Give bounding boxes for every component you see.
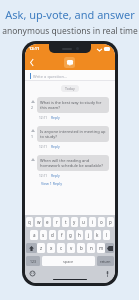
button[interactable]: f bbox=[58, 230, 65, 240]
button[interactable]: e bbox=[44, 217, 51, 227]
button[interactable]: Dictate bbox=[104, 270, 111, 277]
staticText: Reply bbox=[51, 173, 60, 178]
staticText: t bbox=[65, 219, 67, 225]
button[interactable]: space bbox=[42, 256, 95, 266]
staticText: u bbox=[82, 219, 85, 225]
staticText: x bbox=[50, 245, 53, 251]
staticText: 12:11 bbox=[39, 174, 48, 178]
button[interactable]: t bbox=[62, 217, 69, 227]
staticText: q bbox=[28, 219, 31, 225]
button[interactable]: Up-vote bbox=[29, 98, 36, 105]
button[interactable]: s bbox=[40, 230, 47, 240]
button[interactable]: p bbox=[107, 217, 114, 227]
button[interactable]: Reply bbox=[51, 144, 60, 149]
button[interactable]: Write a question... bbox=[25, 70, 115, 81]
staticText: c bbox=[60, 245, 63, 251]
staticText: l bbox=[106, 232, 108, 238]
button[interactable]: l bbox=[103, 230, 110, 240]
staticText: Today bbox=[65, 86, 75, 91]
button[interactable]: Shift bbox=[26, 243, 37, 253]
staticText: p bbox=[109, 219, 112, 225]
staticText: Ask, up-vote, and answer bbox=[5, 7, 135, 22]
button[interactable]: App logo bbox=[64, 57, 75, 68]
button[interactable]: n bbox=[87, 243, 95, 253]
button[interactable]: z bbox=[37, 243, 45, 253]
staticText: 12:11 bbox=[39, 116, 48, 120]
button[interactable]: h bbox=[76, 230, 83, 240]
button[interactable]: Is anyone interested in meeting up to st… bbox=[37, 126, 109, 142]
button[interactable]: What is the best way to study for this e… bbox=[37, 97, 109, 113]
staticText: return bbox=[100, 259, 111, 264]
button[interactable]: j bbox=[85, 230, 92, 240]
button[interactable]: c bbox=[57, 243, 65, 253]
staticText: What is the best way to study for this e… bbox=[40, 100, 106, 110]
staticText: z bbox=[40, 245, 43, 251]
button[interactable]: v bbox=[67, 243, 75, 253]
staticText: When will the reading and homework sched… bbox=[40, 158, 106, 168]
button[interactable]: View 1 Reply bbox=[41, 181, 63, 186]
staticText: Reply bbox=[51, 144, 60, 149]
staticText: Reply bbox=[51, 115, 60, 120]
staticText: w bbox=[37, 219, 41, 225]
button[interactable]: o bbox=[98, 217, 105, 227]
button[interactable]: When will the reading and homework sched… bbox=[37, 155, 109, 171]
button[interactable]: x bbox=[47, 243, 55, 253]
staticText: View 1 Reply bbox=[41, 181, 63, 186]
button[interactable]: Up-vote bbox=[29, 156, 36, 163]
staticText: 12:11 bbox=[29, 46, 40, 51]
button[interactable]: k bbox=[94, 230, 101, 240]
staticText: k bbox=[96, 232, 99, 238]
button[interactable]: r bbox=[53, 217, 60, 227]
staticText: 1 bbox=[31, 134, 34, 139]
staticText: 12:11 bbox=[39, 145, 48, 149]
staticText: i bbox=[92, 219, 94, 225]
staticText: anonymous questions in real time bbox=[2, 25, 138, 37]
button[interactable]: u bbox=[80, 217, 87, 227]
button[interactable]: Backspace bbox=[105, 243, 114, 253]
button[interactable]: a bbox=[30, 230, 38, 240]
staticText: g bbox=[69, 232, 72, 238]
staticText: v bbox=[70, 245, 73, 251]
staticText: s bbox=[42, 232, 45, 238]
staticText: d bbox=[51, 232, 54, 238]
button[interactable]: 123 bbox=[26, 256, 40, 266]
button[interactable]: Back bbox=[25, 55, 39, 70]
staticText: r bbox=[56, 219, 58, 225]
button[interactable]: Up-vote bbox=[29, 127, 36, 134]
staticText: j bbox=[88, 232, 90, 238]
staticText: h bbox=[78, 232, 81, 238]
staticText: space bbox=[63, 259, 74, 264]
staticText: 2 bbox=[31, 105, 34, 110]
staticText: Write a question... bbox=[33, 74, 68, 79]
staticText: Is anyone interested in meeting up to st… bbox=[40, 129, 106, 139]
button[interactable]: g bbox=[67, 230, 74, 240]
button[interactable]: m bbox=[97, 243, 105, 253]
button[interactable]: Emoji bbox=[29, 270, 36, 277]
button[interactable]: Reply bbox=[51, 115, 60, 120]
button[interactable]: Reply bbox=[51, 173, 60, 178]
staticText: m bbox=[99, 245, 104, 251]
button[interactable]: q bbox=[26, 217, 33, 227]
staticText: 123 bbox=[30, 259, 37, 264]
staticText: a bbox=[33, 232, 36, 238]
staticText: e bbox=[46, 219, 49, 225]
staticText: n bbox=[90, 245, 93, 251]
button[interactable]: i bbox=[89, 217, 96, 227]
staticText: f bbox=[61, 232, 63, 238]
button[interactable]: y bbox=[71, 217, 78, 227]
button[interactable]: return bbox=[97, 256, 114, 266]
staticText: b bbox=[80, 245, 83, 251]
staticText: y bbox=[73, 219, 76, 225]
button[interactable]: d bbox=[49, 230, 56, 240]
staticText: o bbox=[100, 219, 103, 225]
button[interactable]: b bbox=[77, 243, 85, 253]
button[interactable]: w bbox=[35, 217, 42, 227]
